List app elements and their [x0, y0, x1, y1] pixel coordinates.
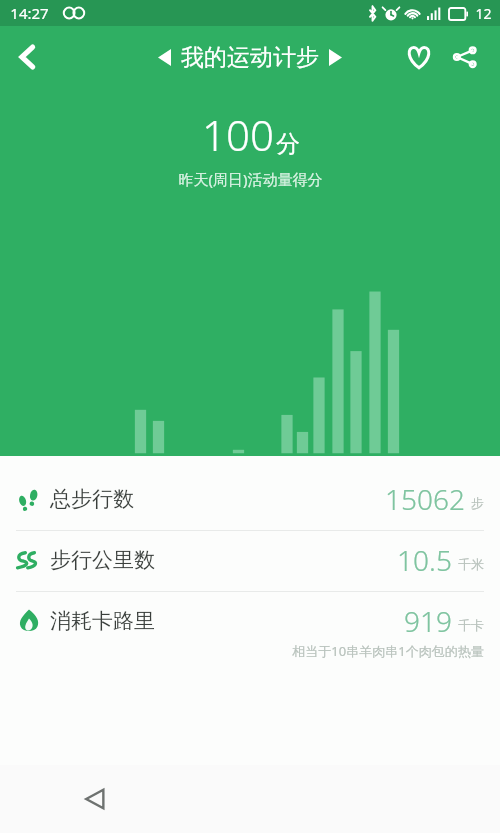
button[interactable]: Back	[72, 776, 118, 822]
button[interactable]: 步行公里数	[0, 531, 500, 591]
button[interactable]: 我的运动计步	[158, 43, 342, 72]
staticText: 步行公里数	[50, 547, 155, 573]
staticText: 昨天(周日)活动量得分	[178, 169, 323, 189]
staticText: 919	[404, 602, 452, 640]
staticText: 15062	[385, 480, 465, 518]
button[interactable]: Share	[442, 34, 488, 80]
staticText: 消耗卡路里	[50, 608, 155, 634]
staticText: 步	[471, 495, 484, 511]
staticText: 总步行数	[50, 486, 134, 512]
staticText: 10.5	[397, 541, 452, 579]
button[interactable]: 消耗卡路里	[0, 592, 500, 672]
staticText: 分	[276, 129, 300, 159]
staticText: 100	[202, 106, 274, 163]
staticText: 14:27	[10, 3, 49, 23]
button[interactable]: Favorite	[396, 34, 442, 80]
staticText: 千米	[458, 556, 484, 572]
staticText: 相当于10串羊肉串1个肉包的热量	[292, 642, 484, 660]
staticText: 千卡	[458, 617, 484, 633]
button[interactable]: Back	[0, 30, 54, 84]
staticText: 我的运动计步	[181, 43, 319, 72]
staticText: 12	[475, 4, 492, 23]
button[interactable]: 总步行数	[0, 470, 500, 530]
